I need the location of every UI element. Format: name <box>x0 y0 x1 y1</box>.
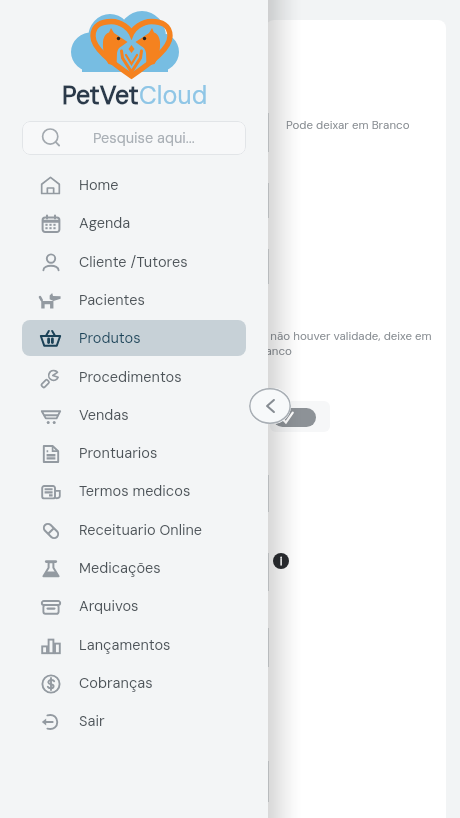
staticText: Pesquise aqui... <box>93 129 195 148</box>
staticText: Home <box>79 176 119 195</box>
staticText: Medicações <box>79 559 161 578</box>
staticText: Arquivos <box>79 597 139 616</box>
staticText: Sair <box>79 712 105 731</box>
button[interactable]: Info <box>273 553 289 569</box>
button[interactable]: Pacientes <box>22 282 246 318</box>
staticText: Prontuarios <box>79 444 158 463</box>
button[interactable]: Toggle <box>273 408 316 427</box>
staticText: Procedimentos <box>79 368 182 387</box>
staticText: Pacientes <box>79 291 145 310</box>
staticText: Lançamentos <box>79 636 171 655</box>
button[interactable]: Termos medicos <box>22 473 246 509</box>
button[interactable]: Pesquise aqui... <box>22 121 246 155</box>
button[interactable]: Cobranças <box>22 665 246 701</box>
staticText: Termos medicos <box>79 482 191 501</box>
button[interactable]: Vendas <box>22 397 246 433</box>
button[interactable]: Cliente /Tutores <box>22 244 246 280</box>
staticText: Se não houver validade, deixe em Branco <box>254 329 432 359</box>
staticText: Agenda <box>79 214 131 233</box>
button[interactable]: Sair <box>22 703 246 739</box>
button[interactable]: Lançamentos <box>22 627 246 663</box>
staticText: Pode deixar em Branco <box>286 118 410 133</box>
staticText: i <box>280 555 283 568</box>
button[interactable]: Receituario Online <box>22 512 246 548</box>
button[interactable]: Collapse menu <box>249 388 291 424</box>
button[interactable]: Procedimentos <box>22 359 246 395</box>
staticText: Receituario Online <box>79 521 203 540</box>
staticText: Vendas <box>79 406 129 425</box>
button[interactable]: Home <box>22 167 246 203</box>
staticText: Cobranças <box>79 674 153 693</box>
button[interactable]: Prontuarios <box>22 435 246 471</box>
staticText: Cloud <box>139 79 208 112</box>
staticText: Produtos <box>79 329 141 348</box>
button[interactable]: Arquivos <box>22 588 246 624</box>
staticText: Cliente /Tutores <box>79 253 188 272</box>
button[interactable]: Agenda <box>22 205 246 241</box>
button[interactable]: Produtos <box>22 320 246 356</box>
button[interactable]: Medicações <box>22 550 246 586</box>
staticText: PetVet <box>62 79 139 112</box>
